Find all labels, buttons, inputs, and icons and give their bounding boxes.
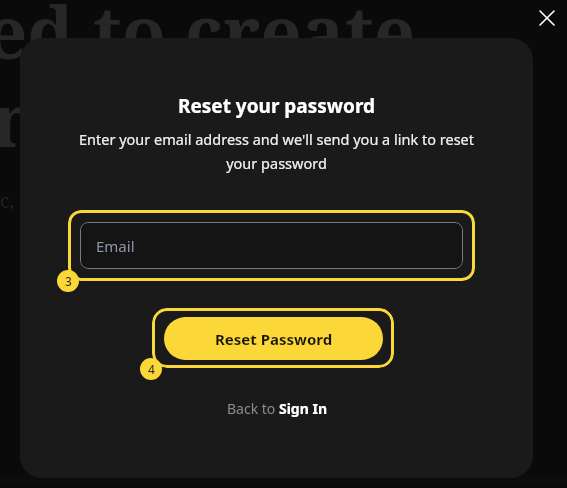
button[interactable]: Close bbox=[531, 2, 563, 34]
staticText: Reset your password bbox=[20, 93, 533, 119]
button[interactable]: Email bbox=[68, 210, 475, 281]
staticText: Email bbox=[96, 236, 135, 256]
staticText: 3 bbox=[65, 273, 72, 289]
staticText: n bbox=[0, 70, 41, 168]
staticText: 4 bbox=[148, 361, 155, 377]
staticText: c, bbox=[0, 188, 15, 214]
button[interactable]: Back to Sign In bbox=[221, 396, 333, 421]
staticText: Back to Sign In bbox=[227, 399, 327, 418]
staticText: ed to create bbox=[0, 0, 416, 80]
button[interactable]: Reset Password bbox=[164, 317, 383, 360]
staticText: Enter your email address and we'll send … bbox=[62, 129, 491, 173]
staticText: Reset Password bbox=[215, 329, 333, 349]
